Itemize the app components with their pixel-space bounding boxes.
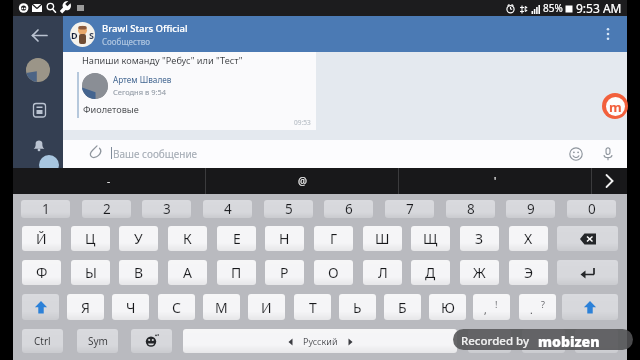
button[interactable]: Ctrl [22, 329, 63, 353]
button[interactable]: Emoji [565, 143, 587, 165]
button[interactable]: Ы [71, 260, 110, 285]
button[interactable]: П [217, 260, 256, 285]
button[interactable]: 5 [264, 200, 313, 218]
staticText: Ф [36, 263, 48, 282]
button[interactable]: Profile [26, 58, 50, 82]
staticText: Х [524, 229, 533, 248]
button[interactable]: More options [593, 19, 623, 49]
staticText: , [484, 303, 487, 317]
staticText: Ч [126, 298, 136, 317]
button[interactable]: Shift [22, 294, 59, 320]
staticText: Артем Швалев [113, 74, 172, 85]
button[interactable]: А [168, 260, 207, 285]
button[interactable]: Ж [460, 260, 499, 285]
button[interactable]: О [314, 260, 353, 285]
button[interactable]: Emoji [131, 329, 172, 353]
staticText: 09:53 [294, 118, 311, 127]
button[interactable]: М [203, 294, 240, 320]
button[interactable]: Г [314, 226, 353, 251]
button[interactable]: 1 [21, 200, 70, 218]
staticText: 9 [527, 200, 535, 218]
button[interactable]: Voice message [597, 143, 619, 165]
button[interactable]: С [158, 294, 195, 320]
button[interactable]: 9 [506, 200, 555, 218]
button[interactable]: Й [22, 226, 61, 251]
staticText: 85% [543, 1, 563, 15]
staticText: 6 [345, 200, 353, 218]
button[interactable]: Д [411, 260, 450, 285]
button[interactable]: Ш [363, 226, 402, 251]
staticText: Э [524, 263, 534, 282]
staticText: И [261, 298, 272, 317]
staticText: П [231, 263, 242, 282]
button[interactable]: 6 [324, 200, 373, 218]
button[interactable]: @ [206, 168, 398, 194]
button[interactable]: Mobizen recorder [602, 93, 628, 119]
button[interactable]: Feed [26, 97, 52, 123]
button[interactable]: Ф [22, 260, 61, 285]
button[interactable]: More suggestions [592, 168, 627, 194]
button[interactable]: Е [217, 226, 256, 251]
button[interactable]: Ю [429, 294, 466, 320]
button[interactable]: Н [265, 226, 304, 251]
staticText: S [89, 29, 94, 41]
button[interactable]: 7 [385, 200, 434, 218]
button[interactable]: . [519, 294, 556, 320]
button[interactable]: Р [265, 260, 304, 285]
staticText: . [530, 303, 533, 317]
button[interactable]: Back [26, 22, 52, 48]
button[interactable]: Л [363, 260, 402, 285]
staticText: 7 [406, 200, 414, 218]
staticText: Напиши команду "Ребус" или "Тест" [82, 54, 243, 67]
button[interactable]: Enter [557, 260, 618, 285]
button[interactable]: Caps lock [562, 294, 618, 320]
staticText: С [172, 298, 181, 317]
staticText: О [328, 263, 339, 282]
button[interactable]: В [119, 260, 158, 285]
button[interactable]: 4 [203, 200, 252, 218]
button[interactable]: Э [509, 260, 548, 285]
button[interactable]: 8 [446, 200, 495, 218]
staticText: ' [494, 174, 497, 188]
staticText: Русский [303, 335, 338, 347]
button[interactable]: Х [509, 226, 548, 251]
staticText: У [134, 229, 143, 248]
button[interactable]: Щ [411, 226, 450, 251]
button[interactable]: Ц [71, 226, 110, 251]
staticText: mobizen [538, 332, 600, 350]
staticText: Фиолетовые [83, 103, 139, 116]
button[interactable] [522, 329, 565, 353]
button[interactable] [468, 329, 511, 353]
button[interactable]: 3 [142, 200, 191, 218]
button[interactable] [575, 329, 618, 353]
staticText: З [475, 229, 484, 248]
staticText: А [183, 263, 192, 282]
button[interactable]: З [460, 226, 499, 251]
staticText: Сегодня в 9:54 [113, 87, 167, 97]
button[interactable]: Б [384, 294, 421, 320]
button[interactable]: Notifications [26, 132, 52, 158]
button[interactable]: ' [399, 168, 591, 194]
button[interactable]: И [248, 294, 285, 320]
button[interactable]: 0 [567, 200, 616, 218]
staticText: ! [495, 298, 498, 310]
staticText: @ [298, 174, 307, 188]
button[interactable]: Я [67, 294, 104, 320]
button[interactable]: Sym [77, 329, 118, 353]
staticText: Ctrl [34, 334, 51, 348]
button[interactable]: У [119, 226, 158, 251]
button[interactable]: , [473, 294, 510, 320]
staticText: Н [279, 229, 290, 248]
button[interactable]: К [168, 226, 207, 251]
button[interactable]: Ь [339, 294, 376, 320]
button[interactable]: Т [294, 294, 331, 320]
button[interactable]: Ч [112, 294, 149, 320]
button[interactable]: - [13, 168, 205, 194]
button[interactable]: Attach [84, 140, 108, 164]
button[interactable]: Русский [183, 329, 457, 353]
staticText: Щ [423, 229, 438, 248]
staticText: 9:53 AM [576, 0, 622, 16]
button[interactable]: 2 [82, 200, 131, 218]
button[interactable]: Backspace [557, 226, 618, 251]
staticText: 0 [588, 200, 596, 218]
